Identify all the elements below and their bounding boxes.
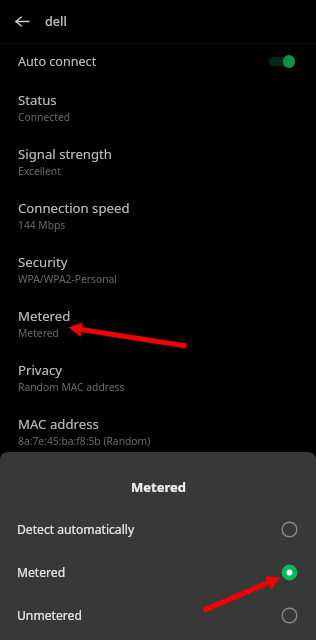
staticText: Security (18, 253, 68, 271)
staticText: Metered (18, 307, 71, 325)
staticText: Detect automatically (17, 521, 135, 538)
staticText: Auto connect (18, 53, 97, 70)
staticText: dell (45, 13, 67, 30)
staticText: Connected (18, 110, 71, 124)
staticText: Connection speed (18, 199, 130, 217)
staticText: Privacy (18, 361, 62, 379)
button[interactable]: Privacy (0, 348, 316, 402)
staticText: Status (18, 91, 57, 109)
staticText: MAC address (18, 415, 99, 433)
staticText: Random MAC address (18, 380, 125, 394)
staticText: 8a:7e:45:ba:f8:5b (Random) (18, 434, 151, 448)
button[interactable]: Signal strength (0, 132, 316, 186)
staticText: Metered (18, 326, 59, 340)
button[interactable]: Unmetered (0, 594, 316, 637)
staticText: Unmetered (17, 607, 82, 624)
staticText: Metered (17, 564, 66, 581)
button[interactable]: Detect automatically (0, 508, 316, 551)
staticText: Excellent (18, 164, 61, 178)
button[interactable]: Security (0, 240, 316, 294)
button[interactable]: Metered (0, 551, 316, 594)
button[interactable]: MAC address (0, 402, 316, 456)
button[interactable]: Connection speed (0, 186, 316, 240)
staticText: Metered (131, 478, 186, 496)
button[interactable]: Auto connect toggle, on (269, 55, 295, 68)
button[interactable]: Auto connect (0, 44, 316, 78)
button[interactable]: Status (0, 78, 316, 132)
staticText: 144 Mbps (18, 218, 66, 232)
staticText: WPA/WPA2-Personal (18, 272, 118, 286)
button[interactable]: Back (0, 0, 45, 43)
button[interactable]: Metered (0, 294, 316, 348)
staticText: Signal strength (18, 145, 112, 163)
